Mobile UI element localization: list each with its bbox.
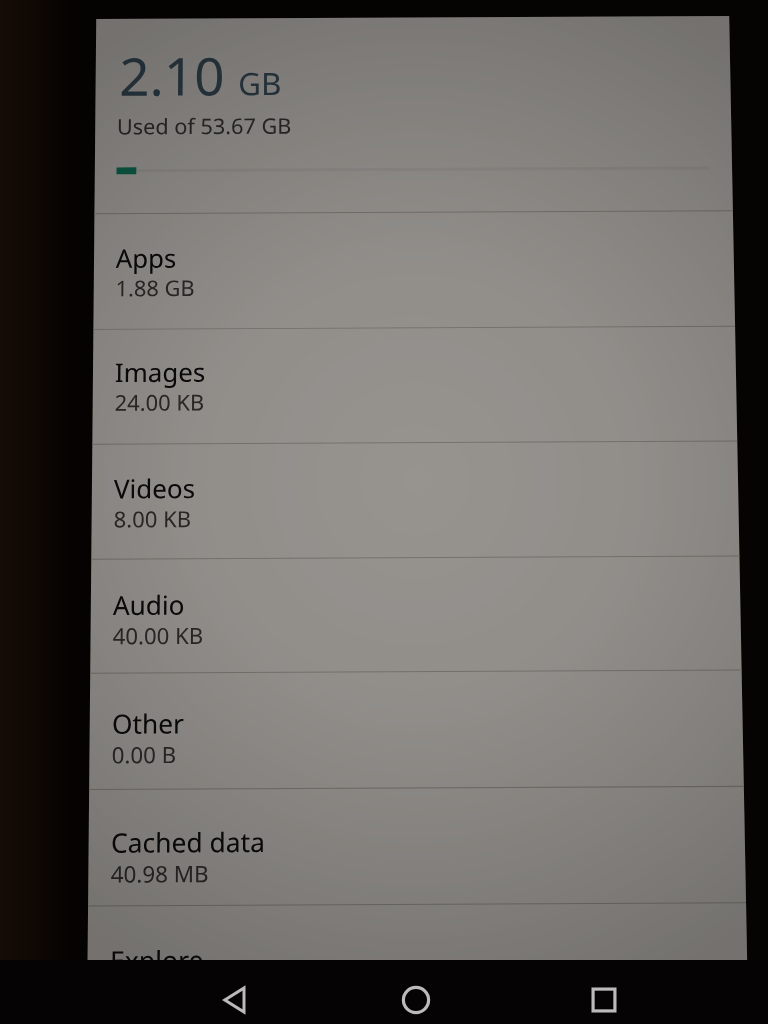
button[interactable]: Apps bbox=[93, 211, 735, 329]
staticText: 8.00 KB bbox=[114, 503, 192, 533]
staticText: 24.00 KB bbox=[114, 387, 204, 417]
button[interactable]: Videos bbox=[91, 442, 739, 559]
staticText: Images bbox=[115, 354, 205, 389]
button[interactable]: Back bbox=[187, 976, 283, 1024]
staticText: 0.00 B bbox=[112, 738, 177, 769]
button[interactable]: Recent apps bbox=[556, 976, 652, 1024]
staticText: 2.10 bbox=[119, 39, 225, 111]
staticText: Cached data bbox=[111, 823, 265, 860]
staticText: Videos bbox=[114, 470, 196, 505]
button[interactable]: Explore bbox=[87, 903, 747, 964]
button[interactable]: Audio bbox=[90, 556, 742, 673]
staticText: Audio bbox=[113, 586, 185, 622]
staticText: 40.00 KB bbox=[113, 620, 203, 650]
button[interactable]: Other bbox=[89, 671, 744, 789]
staticText: Explore bbox=[110, 941, 204, 978]
button[interactable]: Cached data bbox=[88, 787, 746, 907]
staticText: 40.98 MB bbox=[111, 857, 209, 889]
button[interactable]: Images bbox=[92, 327, 737, 444]
staticText: Other bbox=[112, 705, 185, 741]
button[interactable]: Home bbox=[368, 976, 464, 1024]
staticText: Used of 53.67 GB bbox=[117, 110, 292, 140]
staticText: Apps bbox=[116, 240, 177, 275]
staticText: GB bbox=[238, 62, 282, 105]
staticText: 1.88 GB bbox=[115, 272, 195, 302]
